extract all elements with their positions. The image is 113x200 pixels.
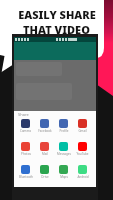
staticText: Maps — [60, 175, 68, 179]
button[interactable]: Gmail — [73, 118, 92, 133]
staticText: Mail — [42, 152, 48, 156]
button[interactable]: Android — [73, 164, 92, 179]
button[interactable]: Mail — [35, 141, 54, 156]
staticText: Bluetooth — [19, 175, 33, 179]
staticText: EASILY SHARE — [18, 7, 96, 22]
staticText: Android — [77, 175, 89, 179]
button[interactable]: Messages — [54, 141, 73, 156]
button[interactable]: Facebook — [35, 118, 54, 133]
staticText: Gmail — [78, 129, 87, 133]
staticText: Share — [18, 112, 29, 117]
staticText: Messages — [57, 152, 71, 156]
staticText: THAT VIDEO — [23, 22, 90, 37]
button[interactable]: Bluetooth — [16, 164, 35, 179]
button[interactable]: Drive — [35, 164, 54, 179]
button[interactable]: Photos — [16, 141, 35, 156]
staticText: Profile — [59, 129, 69, 133]
staticText: YouTube — [76, 152, 89, 156]
button[interactable]: Profile — [54, 118, 73, 133]
button[interactable]: Camera — [16, 118, 35, 133]
button[interactable]: Maps — [54, 164, 73, 179]
staticText: Camera — [20, 129, 31, 133]
button[interactable]: YouTube — [73, 141, 92, 156]
staticText: Drive — [41, 175, 49, 179]
staticText: Photos — [21, 152, 31, 156]
staticText: Facebook — [38, 129, 52, 133]
